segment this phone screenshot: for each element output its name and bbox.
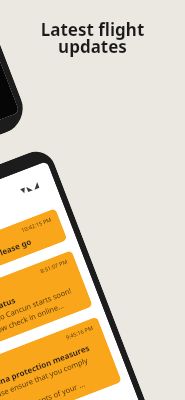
- staticText: the requirements of your …: [0, 378, 87, 400]
- staticText: 8:51:07 PM: [0, 258, 68, 309]
- staticText: Corona protection measures: [0, 342, 91, 393]
- staticText: Gate changed. Please go: [0, 235, 33, 281]
- staticText: 10:42:15 PM: [0, 216, 52, 267]
- staticText: Please ensure that you comply with: [0, 349, 108, 400]
- staticText: Check-in status: [0, 294, 17, 326]
- button[interactable]: 9:45:16 PM: [0, 316, 122, 400]
- staticText: Latest flight updates: [0, 18, 185, 58]
- staticText: 9:45:16 PM: [0, 324, 94, 375]
- staticText: You can now check in online…: [0, 300, 65, 347]
- staticText: Your flight to Cancun starts soon!: [0, 285, 73, 337]
- button[interactable]: 10:42:15 PM: [0, 208, 67, 290]
- button[interactable]: 8:51:07 PM: [0, 250, 93, 356]
